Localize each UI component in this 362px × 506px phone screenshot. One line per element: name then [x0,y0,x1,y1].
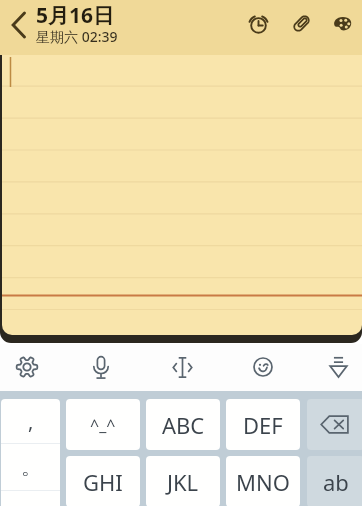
staticText: GHI [83,467,123,497]
staticText: JKL [167,467,199,497]
staticText: MNO [236,467,290,497]
button[interactable]: GHI [66,456,140,506]
button[interactable]: Change colour [325,6,359,40]
button[interactable]: Emoji [241,345,285,389]
staticText: 。 [21,455,41,480]
button[interactable] [307,399,362,450]
button[interactable]: , [1,399,60,443]
staticText: DEF [243,410,283,440]
staticText: , [28,408,34,435]
button[interactable]: Move cursor [160,345,204,389]
staticText: 5月16日 [36,1,115,30]
staticText: 星期六 02:39 [36,27,118,46]
button[interactable]: ABC [146,399,220,450]
staticText: ABC [162,410,205,440]
button[interactable]: Reminder [241,6,275,40]
button[interactable]: Voice input [79,345,123,389]
staticText: ab [323,467,349,497]
button[interactable]: ^_^ [66,399,140,450]
button[interactable]: ab [307,456,362,506]
button[interactable]: Back [3,0,34,52]
button[interactable]: Attach file [284,6,318,40]
button[interactable]: DEF [226,399,300,450]
button[interactable]: 。 [1,444,60,490]
button[interactable]: JKL [146,456,220,506]
button[interactable]: Hide keyboard [316,345,360,389]
button[interactable]: MNO [226,456,300,506]
button[interactable]: Settings [5,345,49,389]
staticText: ^_^ [90,414,116,436]
